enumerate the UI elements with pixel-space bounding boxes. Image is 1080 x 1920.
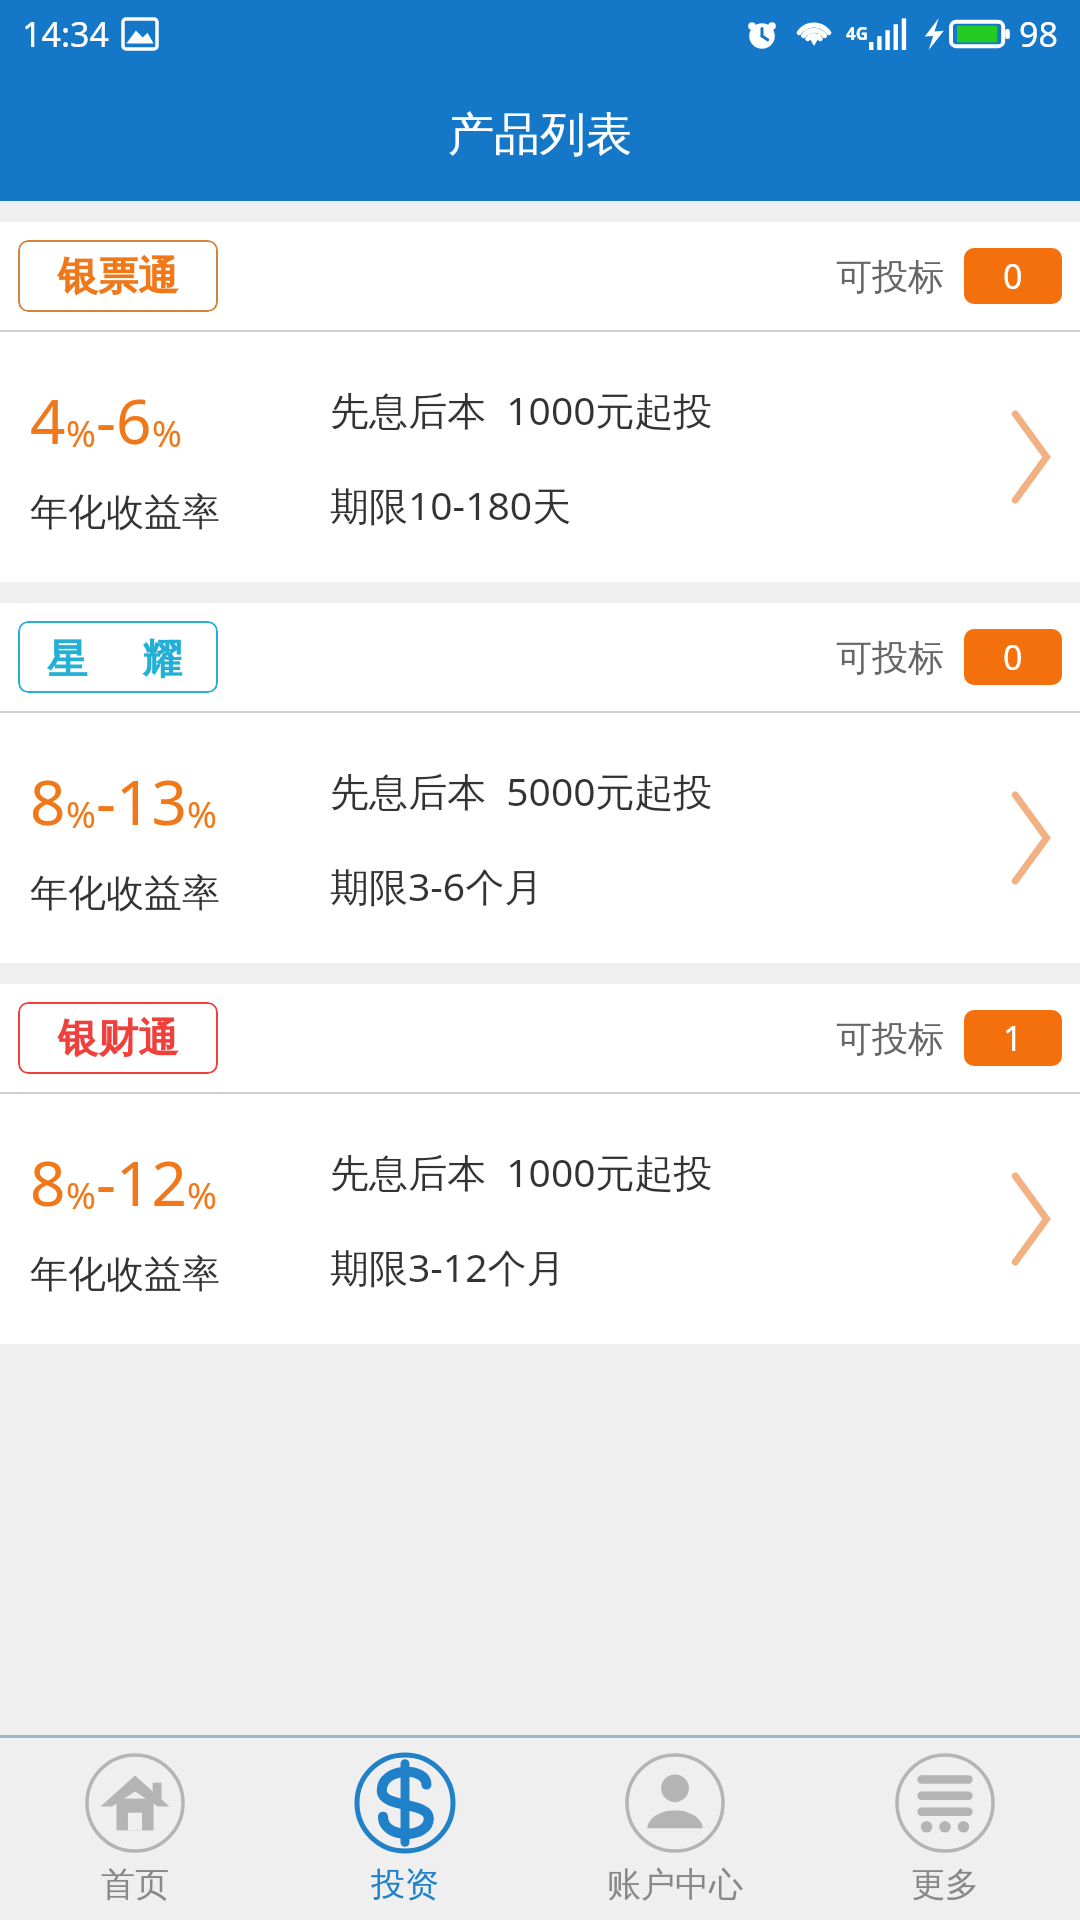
staticText: 首页	[101, 1863, 169, 1906]
staticText: -	[96, 759, 116, 843]
staticText: 98	[1019, 11, 1058, 57]
staticText: -	[96, 1140, 116, 1224]
button[interactable]: 星 耀	[0, 603, 1080, 963]
button[interactable]: 投资	[270, 1738, 540, 1920]
staticText: 6	[116, 378, 152, 462]
staticText: 银财通	[58, 1013, 178, 1063]
staticText: 8	[30, 759, 66, 843]
staticText: 14:34	[22, 11, 109, 57]
staticText: 年化收益率	[30, 488, 220, 536]
staticText: 投资	[371, 1863, 439, 1906]
staticText: 0	[1003, 634, 1023, 680]
staticText: 先息后本 5000元起投	[330, 764, 713, 817]
staticText: 先息后本 1000元起投	[330, 383, 713, 436]
staticText: 13	[116, 759, 187, 843]
staticText: 4G	[846, 22, 869, 45]
staticText: 银票通	[58, 251, 178, 301]
staticText: %	[66, 1171, 96, 1220]
staticText: 12	[116, 1140, 187, 1224]
staticText: %	[187, 1171, 217, 1220]
button[interactable]: 更多	[810, 1738, 1080, 1920]
staticText: %	[66, 409, 96, 458]
button[interactable]: 首页	[0, 1738, 270, 1920]
staticText: -	[96, 378, 116, 462]
staticText: %	[152, 409, 182, 458]
staticText: 0	[1003, 253, 1023, 299]
staticText: 先息后本 1000元起投	[330, 1145, 713, 1198]
staticText: 更多	[911, 1863, 979, 1906]
staticText: %	[187, 790, 217, 839]
staticText: 8	[30, 1140, 66, 1224]
button[interactable]: 银财通	[0, 984, 1080, 1344]
staticText: 产品列表	[448, 106, 632, 164]
staticText: 账户中心	[607, 1863, 743, 1906]
staticText: 4	[30, 378, 66, 462]
staticText: 期限3-12个月	[330, 1240, 566, 1293]
staticText: 1	[1003, 1015, 1023, 1061]
staticText: 期限3-6个月	[330, 859, 544, 912]
button[interactable]: 账户中心	[540, 1738, 810, 1920]
staticText: %	[66, 790, 96, 839]
button[interactable]: 银票通	[0, 222, 1080, 582]
staticText: 期限10-180天	[330, 478, 572, 531]
staticText: 可投标	[836, 1016, 944, 1061]
staticText: 星 耀	[47, 630, 189, 685]
staticText: 可投标	[836, 635, 944, 680]
staticText: 可投标	[836, 254, 944, 299]
staticText: 年化收益率	[30, 1250, 220, 1298]
staticText: 年化收益率	[30, 869, 220, 917]
